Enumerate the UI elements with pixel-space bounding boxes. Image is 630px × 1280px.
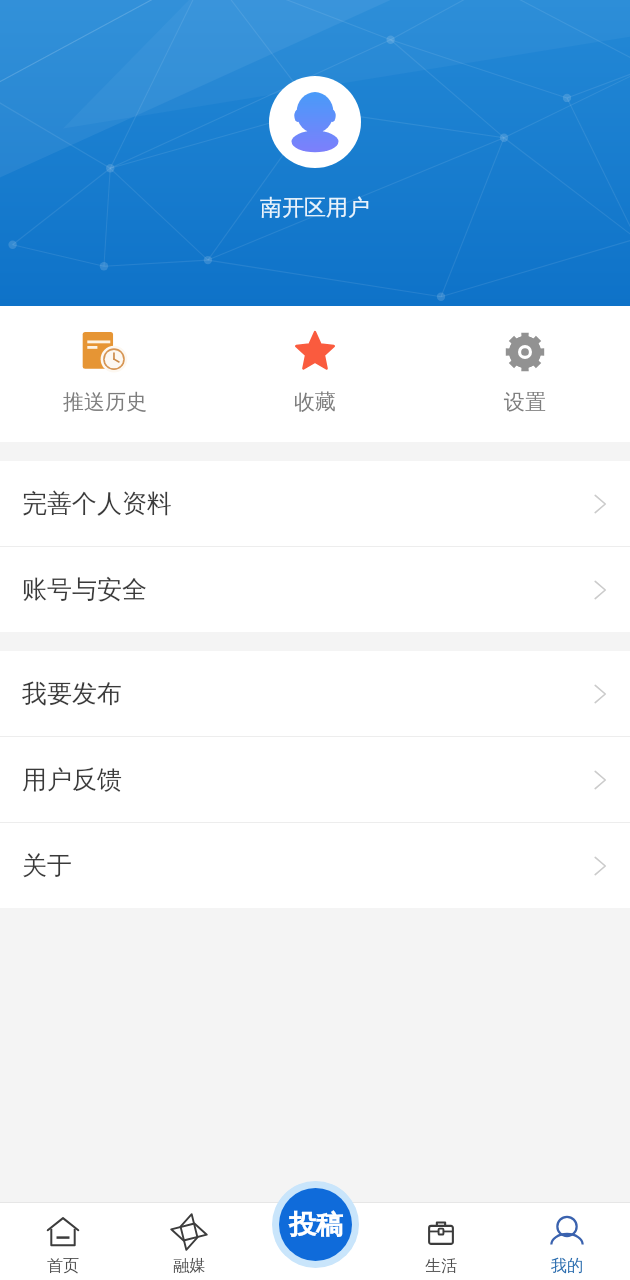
staticText: 完善个人资料 <box>22 488 172 519</box>
staticText: 收藏 <box>294 389 336 415</box>
staticText: 推送历史 <box>63 389 147 415</box>
staticText: 关于 <box>22 850 72 881</box>
button[interactable]: 收藏 <box>210 306 420 442</box>
button[interactable]: 生活 <box>378 1202 504 1280</box>
staticText: 我的 <box>551 1256 583 1276</box>
staticText: 南开区用户 <box>260 194 370 222</box>
staticText: 融媒 <box>173 1256 205 1276</box>
button[interactable]: 我要发布 <box>0 651 630 736</box>
button[interactable]: 设置 <box>420 306 630 442</box>
button[interactable]: 融媒 <box>126 1202 252 1280</box>
staticText: 生活 <box>425 1256 457 1276</box>
staticText: 账号与安全 <box>22 574 147 605</box>
staticText: 用户反馈 <box>22 764 122 795</box>
staticText: 我要发布 <box>22 678 122 709</box>
button[interactable]: 关于 <box>0 823 630 908</box>
staticText: 设置 <box>504 389 546 415</box>
staticText: 投稿 <box>289 1208 343 1242</box>
button[interactable]: 投稿 <box>272 1181 359 1268</box>
staticText: 首页 <box>47 1256 79 1276</box>
button[interactable]: 用户反馈 <box>0 737 630 822</box>
button[interactable]: 完善个人资料 <box>0 461 630 546</box>
button[interactable]: 账号与安全 <box>0 547 630 632</box>
button[interactable]: 我的 <box>504 1202 630 1280</box>
button[interactable]: 首页 <box>0 1202 126 1280</box>
button[interactable]: 推送历史 <box>0 306 210 442</box>
